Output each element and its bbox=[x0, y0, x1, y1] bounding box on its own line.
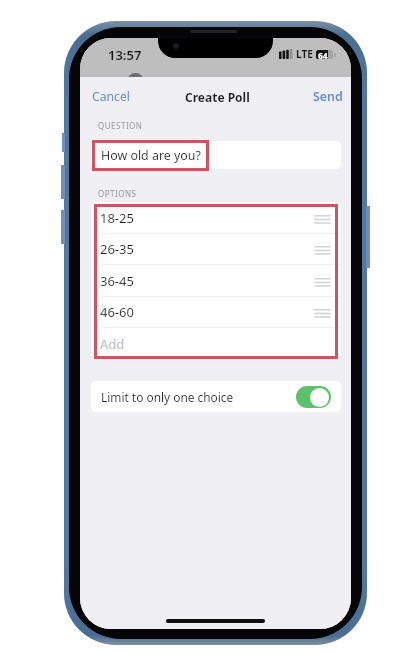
button[interactable]: 18-25 bbox=[91, 202, 341, 233]
button[interactable]: Send bbox=[305, 83, 351, 110]
button[interactable]: Cancel bbox=[84, 83, 138, 110]
staticText: QUESTION bbox=[98, 120, 143, 131]
staticText: Send bbox=[313, 88, 343, 105]
staticText: Limit to only one choice bbox=[101, 389, 234, 405]
staticText: How old are you? bbox=[101, 147, 201, 164]
staticText: 18-25 bbox=[100, 209, 134, 227]
staticText: 26-35 bbox=[100, 240, 134, 258]
staticText: 64 bbox=[318, 50, 328, 59]
button[interactable]: 46-60 bbox=[91, 296, 341, 327]
staticText: 46-60 bbox=[100, 303, 134, 321]
staticText: Create Poll bbox=[185, 89, 250, 105]
other: Reorder bbox=[315, 309, 330, 318]
button[interactable]: Add bbox=[91, 328, 341, 359]
staticText: OPTIONS bbox=[98, 188, 137, 199]
button[interactable]: 36-45 bbox=[91, 265, 341, 296]
staticText: Add bbox=[100, 335, 125, 353]
other: Reorder bbox=[315, 278, 330, 287]
staticText: Cancel bbox=[92, 88, 130, 105]
other: Reorder bbox=[315, 246, 330, 255]
button[interactable]: How old are you? bbox=[91, 141, 341, 169]
staticText: 36-45 bbox=[100, 272, 134, 290]
other: Reorder bbox=[315, 215, 330, 224]
staticText: LTE bbox=[296, 47, 313, 61]
button[interactable]: Limit to only one choice bbox=[91, 381, 341, 412]
button[interactable]: 26-35 bbox=[91, 233, 341, 264]
staticText: 13:57 bbox=[108, 46, 142, 64]
